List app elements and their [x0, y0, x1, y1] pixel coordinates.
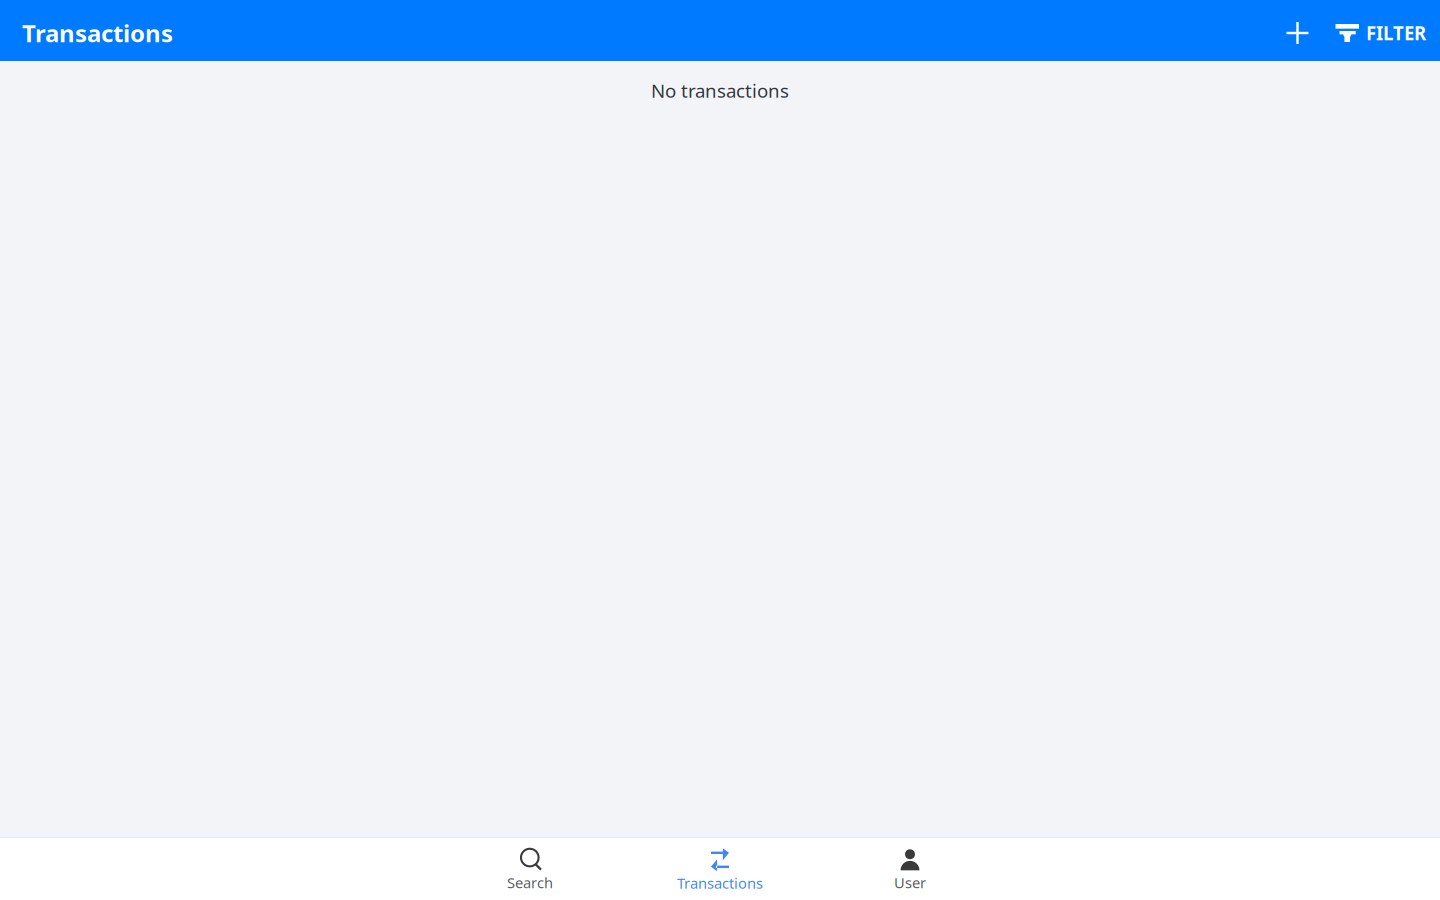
staticText: Transactions	[677, 873, 763, 893]
button[interactable]: FILTER	[1327, 11, 1426, 55]
button[interactable]: User	[815, 836, 1005, 900]
button[interactable]: Add transaction	[1278, 12, 1315, 54]
staticText: No transactions	[651, 78, 789, 103]
staticText: FILTER	[1366, 21, 1426, 45]
staticText: Transactions	[22, 17, 173, 49]
staticText: Search	[507, 873, 553, 892]
button[interactable]: Transactions	[625, 835, 815, 900]
button[interactable]: Search	[435, 836, 625, 900]
staticText: User	[894, 873, 926, 892]
